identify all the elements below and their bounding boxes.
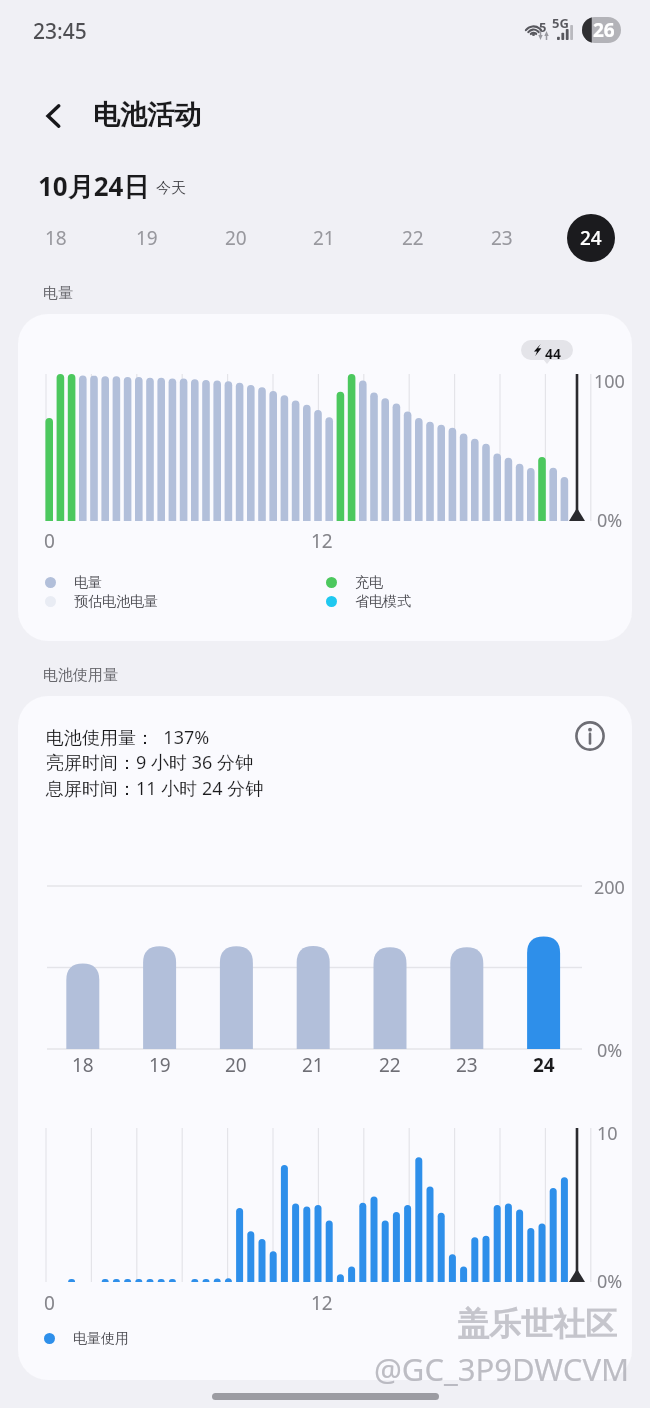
- staticText: 26: [593, 17, 615, 43]
- staticText: 200: [594, 875, 625, 900]
- button[interactable]: Info: [562, 708, 618, 764]
- button[interactable]: 23: [478, 214, 526, 262]
- staticText: 21: [302, 1052, 324, 1078]
- staticText: 23: [456, 1052, 478, 1078]
- staticText: 电池使用量: [43, 666, 118, 685]
- staticText: 20: [225, 225, 247, 251]
- staticText: 24: [580, 225, 602, 251]
- staticText: 盖乐世社区: [457, 1304, 617, 1344]
- staticText: 息屏时间：11 小时 24 分钟: [46, 776, 264, 801]
- staticText: 5G: [552, 14, 569, 32]
- button[interactable]: Back: [26, 88, 82, 144]
- staticText: 10: [597, 1121, 618, 1146]
- staticText: 44: [545, 344, 562, 363]
- staticText: 20: [225, 1052, 247, 1078]
- staticText: 22: [402, 225, 424, 251]
- button[interactable]: 20: [212, 214, 260, 262]
- staticText: 5: [539, 18, 547, 36]
- button[interactable]: 18: [32, 214, 80, 262]
- staticText: 电量使用: [73, 1330, 129, 1348]
- staticText: 19: [136, 225, 158, 251]
- staticText: 12: [311, 528, 333, 554]
- staticText: 12: [311, 1290, 333, 1316]
- staticText: 18: [72, 1052, 94, 1078]
- staticText: 23: [491, 225, 513, 251]
- button[interactable]: 21: [300, 214, 348, 262]
- staticText: 24: [533, 1052, 555, 1078]
- staticText: 充电: [355, 574, 383, 592]
- staticText: 今天: [156, 179, 186, 198]
- staticText: 预估电池电量: [74, 593, 158, 611]
- staticText: 0%: [597, 1038, 623, 1063]
- staticText: 电池使用量： 137%: [46, 725, 210, 750]
- staticText: 10月24日: [38, 168, 150, 204]
- staticText: 亮屏时间：9 小时 36 分钟: [46, 750, 253, 775]
- staticText: 23:45: [33, 17, 87, 46]
- staticText: 0%: [597, 1269, 623, 1294]
- staticText: 19: [149, 1052, 171, 1078]
- button[interactable]: 19: [123, 214, 171, 262]
- staticText: 0: [44, 528, 55, 554]
- staticText: 18: [45, 225, 67, 251]
- staticText: 电量: [74, 574, 102, 592]
- staticText: 22: [379, 1052, 401, 1078]
- staticText: 0%: [597, 508, 623, 533]
- staticText: 0: [44, 1290, 55, 1316]
- staticText: @GC_3P9DWCVM: [374, 1348, 630, 1390]
- button[interactable]: 24: [567, 214, 615, 262]
- staticText: 21: [313, 225, 335, 251]
- staticText: 电池活动: [93, 98, 201, 132]
- staticText: 电量: [43, 284, 73, 303]
- staticText: 省电模式: [355, 593, 411, 611]
- staticText: 100: [594, 369, 625, 394]
- button[interactable]: 22: [389, 214, 437, 262]
